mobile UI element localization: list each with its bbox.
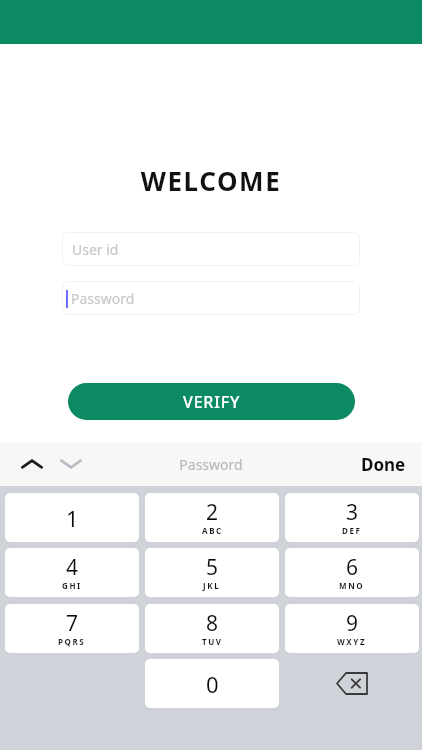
- button[interactable]: 4: [5, 548, 139, 597]
- staticText: 0: [206, 669, 219, 699]
- staticText: 8: [206, 609, 219, 638]
- button[interactable]: Previous field: [12, 442, 52, 486]
- staticText: ABC: [202, 525, 223, 536]
- button[interactable]: 0: [145, 659, 279, 708]
- button[interactable]: Next field: [51, 442, 91, 486]
- button[interactable]: 7: [5, 604, 139, 653]
- staticText: Password: [71, 289, 135, 308]
- staticText: WELCOME: [0, 163, 422, 198]
- button[interactable]: 2: [145, 493, 279, 542]
- staticText: 3: [346, 498, 359, 527]
- button[interactable]: Done: [353, 445, 414, 484]
- staticText: 4: [66, 553, 79, 582]
- staticText: 6: [346, 553, 359, 582]
- button[interactable]: 5: [145, 548, 279, 597]
- staticText: Password: [0, 455, 422, 474]
- staticText: 9: [346, 609, 359, 638]
- button[interactable]: 1: [5, 493, 139, 542]
- button[interactable]: Password: [62, 281, 360, 315]
- staticText: JKL: [203, 580, 221, 591]
- staticText: 7: [66, 609, 79, 638]
- staticText: Done: [361, 453, 406, 476]
- staticText: VERIFY: [183, 391, 241, 413]
- staticText: DEF: [342, 525, 362, 536]
- button[interactable]: 3: [285, 493, 419, 542]
- button[interactable]: 8: [145, 604, 279, 653]
- button[interactable]: 9: [285, 604, 419, 653]
- staticText: 5: [206, 553, 219, 582]
- staticText: 2: [206, 498, 219, 527]
- button[interactable]: 6: [285, 548, 419, 597]
- button[interactable]: VERIFY: [68, 383, 355, 420]
- staticText: MNO: [339, 580, 365, 591]
- staticText: WXYZ: [337, 636, 367, 647]
- staticText: TUV: [202, 636, 223, 647]
- button[interactable]: Backspace: [285, 659, 419, 708]
- staticText: GHI: [62, 580, 82, 591]
- button[interactable]: User id: [62, 232, 360, 266]
- staticText: PQRS: [58, 636, 86, 647]
- staticText: User id: [72, 240, 119, 259]
- staticText: 1: [66, 503, 79, 533]
